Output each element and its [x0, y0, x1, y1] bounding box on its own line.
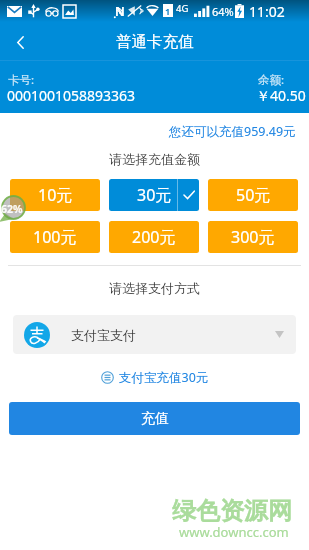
staticText: ￥40.50: [256, 86, 306, 105]
button[interactable]: 30元: [109, 179, 199, 211]
staticText: 绿色资源网: [172, 496, 292, 526]
button[interactable]: 50元: [208, 179, 298, 211]
staticText: 30元: [137, 184, 172, 206]
staticText: 100元: [33, 226, 77, 248]
staticText: 64%: [212, 4, 234, 19]
staticText: 请选择支付方式: [109, 280, 200, 296]
button[interactable]: 100元: [10, 221, 100, 253]
staticText: 卡号:: [8, 72, 35, 88]
button[interactable]: 充值: [9, 402, 300, 435]
button[interactable]: Back: [6, 28, 34, 56]
staticText: 您还可以充值959.49元: [169, 123, 296, 140]
staticText: 50元: [236, 184, 271, 206]
staticText: 62%: [1, 202, 23, 216]
staticText: 10元: [38, 184, 73, 206]
button[interactable]: 300元: [208, 221, 298, 253]
staticText: 支付宝支付: [71, 327, 136, 343]
staticText: 4G: [176, 2, 189, 15]
staticText: 0001001058893363: [7, 86, 136, 105]
staticText: 支付宝充值30元: [119, 369, 209, 386]
staticText: N: [115, 3, 125, 19]
staticText: 请选择充值金额: [109, 151, 200, 167]
button[interactable]: 200元: [109, 221, 199, 253]
staticText: 普通卡充值: [116, 32, 194, 52]
staticText: 余额:: [258, 72, 285, 88]
staticText: 1: [165, 5, 171, 17]
staticText: www.downcc.com: [179, 523, 289, 541]
button[interactable]: 支付宝支付: [13, 315, 296, 354]
staticText: 11:02: [249, 2, 285, 21]
staticText: 200元: [132, 226, 176, 248]
staticText: 300元: [231, 226, 275, 248]
button[interactable]: 10元: [10, 179, 100, 211]
staticText: 充值: [141, 410, 169, 428]
